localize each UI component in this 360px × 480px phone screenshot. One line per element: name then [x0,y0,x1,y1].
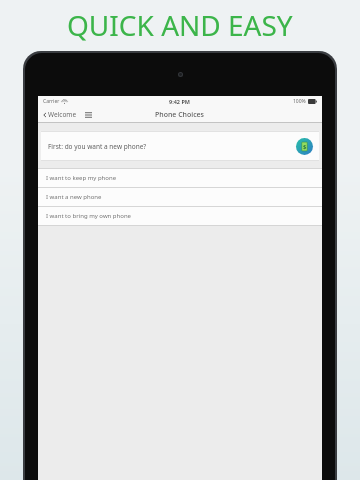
staticText: $ [303,143,307,151]
button[interactable]: I want a new phone [38,188,322,206]
staticText: I want to bring my own phone [46,212,131,220]
button[interactable]: First: do you want a new phone? [41,131,319,161]
staticText: Welcome [48,110,77,119]
staticText: Phone Choices [155,110,205,120]
button[interactable]: I want to keep my phone [38,169,322,187]
staticText: Carrier [43,98,60,105]
staticText: I want a new phone [46,193,102,201]
staticText: 9:42 PM [169,98,191,105]
staticText: QUICK AND EASY [67,6,293,44]
staticText: I want to keep my phone [46,174,117,182]
button[interactable]: Menu [82,109,94,121]
button[interactable]: I want to bring my own phone [38,207,322,225]
staticText: 100% [293,98,306,105]
staticText: First: do you want a new phone? [48,142,147,151]
button[interactable]: Welcome [41,108,78,121]
